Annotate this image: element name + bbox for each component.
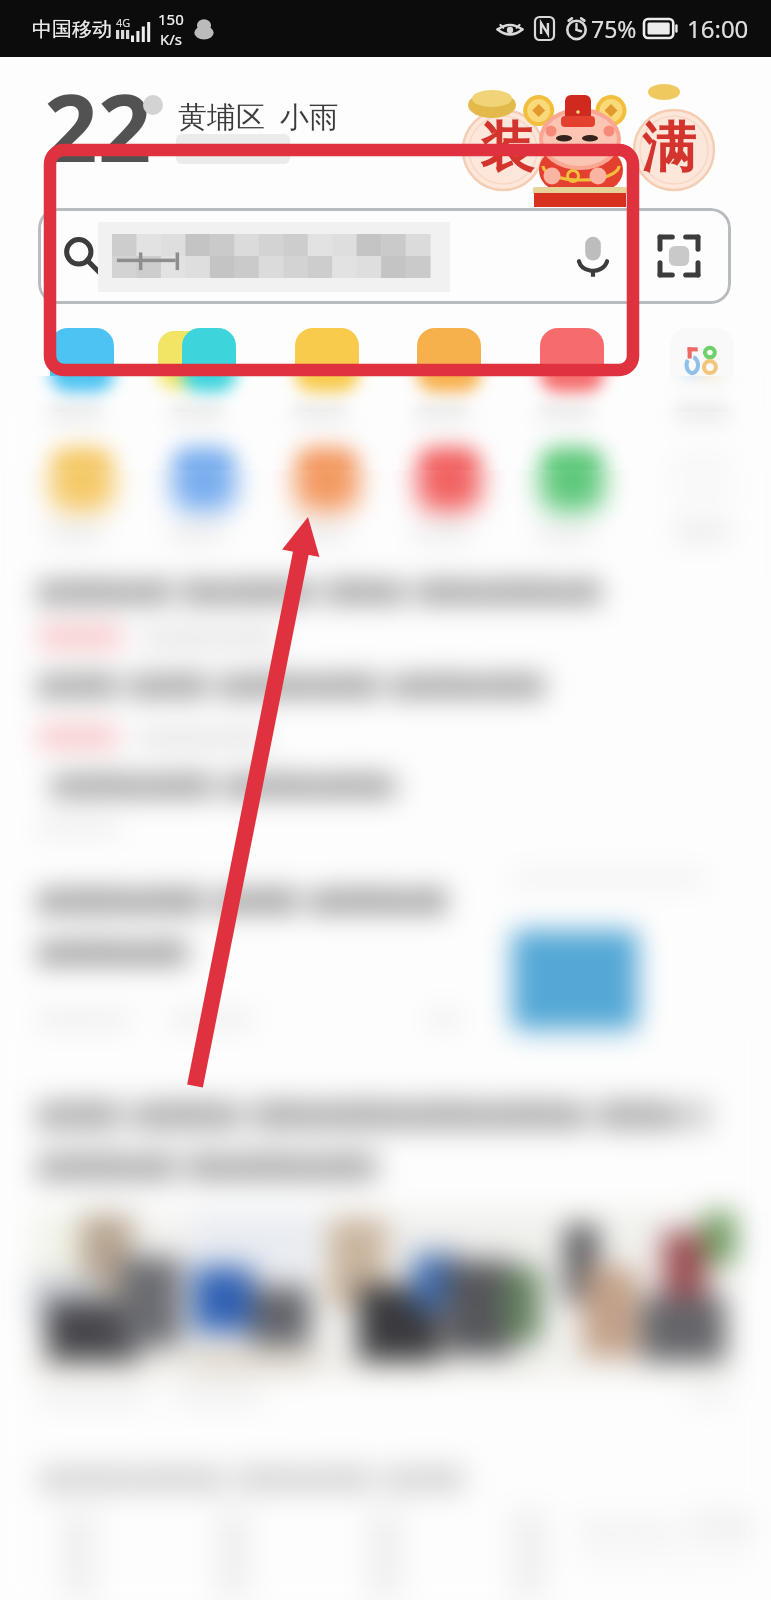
button[interactable]: Voice search	[38, 208, 626, 304]
staticText: 中国移动	[32, 17, 112, 42]
button[interactable]	[644, 328, 760, 428]
button[interactable]	[139, 447, 255, 547]
button[interactable]	[17, 328, 133, 428]
button[interactable]	[139, 328, 255, 428]
button[interactable]	[507, 328, 623, 376]
button[interactable]	[262, 447, 378, 547]
button[interactable]	[17, 328, 133, 428]
button[interactable]: Voice search	[578, 233, 608, 279]
button[interactable]: Voice search	[578, 233, 608, 279]
button[interactable]	[139, 328, 255, 428]
button[interactable]: Scan QR code	[626, 208, 731, 304]
button[interactable]	[262, 328, 378, 428]
button[interactable]	[507, 447, 623, 547]
button[interactable]: Voice search	[578, 233, 608, 279]
button[interactable]	[139, 447, 255, 547]
button[interactable]	[17, 328, 133, 428]
button[interactable]	[262, 447, 378, 547]
staticText: 16:00	[687, 12, 749, 45]
button[interactable]: Voice search	[38, 208, 626, 304]
button[interactable]: Voice search	[578, 233, 608, 279]
button[interactable]	[139, 328, 255, 376]
button[interactable]	[262, 328, 378, 428]
staticText: 16:00	[687, 12, 749, 45]
button[interactable]	[384, 447, 500, 547]
button[interactable]	[644, 328, 760, 428]
button[interactable]	[507, 447, 623, 547]
button[interactable]	[644, 328, 760, 428]
button[interactable]	[384, 447, 500, 547]
button[interactable]	[17, 328, 133, 428]
button[interactable]	[17, 447, 133, 547]
button[interactable]	[384, 447, 500, 547]
button[interactable]: Voice search	[38, 208, 626, 304]
button[interactable]: Voice search	[578, 233, 608, 279]
button[interactable]	[17, 447, 133, 547]
staticText: 22	[44, 62, 152, 190]
button[interactable]	[262, 328, 378, 376]
button[interactable]	[139, 447, 255, 547]
button[interactable]	[17, 328, 133, 376]
button[interactable]	[384, 447, 500, 547]
button[interactable]: Scan QR code	[626, 208, 731, 304]
button[interactable]	[262, 447, 378, 547]
button[interactable]: Scan QR code	[626, 208, 731, 304]
button[interactable]	[507, 328, 623, 428]
button[interactable]	[262, 447, 378, 547]
button[interactable]	[644, 328, 760, 376]
button[interactable]	[384, 328, 500, 428]
staticText: 150	[158, 9, 184, 29]
staticText: 22	[44, 62, 152, 190]
button[interactable]: Voice search	[38, 208, 626, 304]
button[interactable]	[139, 447, 255, 547]
staticText: 装	[480, 114, 534, 182]
button[interactable]	[139, 447, 255, 547]
button[interactable]	[507, 328, 623, 428]
button[interactable]	[384, 328, 500, 428]
button[interactable]	[139, 328, 255, 428]
button[interactable]	[139, 328, 255, 428]
button[interactable]	[507, 328, 623, 428]
button[interactable]: Scan QR code	[626, 208, 731, 304]
button[interactable]	[507, 328, 623, 428]
button[interactable]	[17, 447, 133, 547]
button[interactable]: Voice search	[578, 233, 608, 279]
button[interactable]: Voice search	[38, 208, 626, 304]
button[interactable]	[262, 328, 378, 428]
staticText: 黄埔区 小雨	[178, 96, 339, 136]
button[interactable]	[507, 328, 623, 428]
button[interactable]	[384, 328, 500, 428]
button[interactable]	[139, 328, 255, 428]
button[interactable]	[644, 328, 760, 428]
button[interactable]: Scan QR code	[626, 208, 731, 304]
staticText: 黄埔区 小雨	[178, 96, 339, 136]
staticText: 满	[642, 114, 696, 182]
button[interactable]	[262, 447, 378, 547]
button[interactable]	[384, 328, 500, 428]
button[interactable]	[17, 328, 133, 428]
button[interactable]	[262, 328, 378, 428]
button[interactable]	[262, 328, 378, 428]
button[interactable]: Voice search	[38, 208, 626, 304]
button[interactable]: Scan QR code	[626, 208, 731, 304]
button[interactable]	[644, 328, 760, 428]
button[interactable]	[507, 447, 623, 547]
button[interactable]	[384, 328, 500, 428]
button[interactable]	[507, 447, 623, 547]
button[interactable]	[384, 328, 500, 376]
staticText: K/s	[160, 29, 183, 49]
button[interactable]	[17, 447, 133, 547]
button[interactable]	[17, 447, 133, 547]
button[interactable]	[384, 447, 500, 547]
button[interactable]	[507, 447, 623, 547]
